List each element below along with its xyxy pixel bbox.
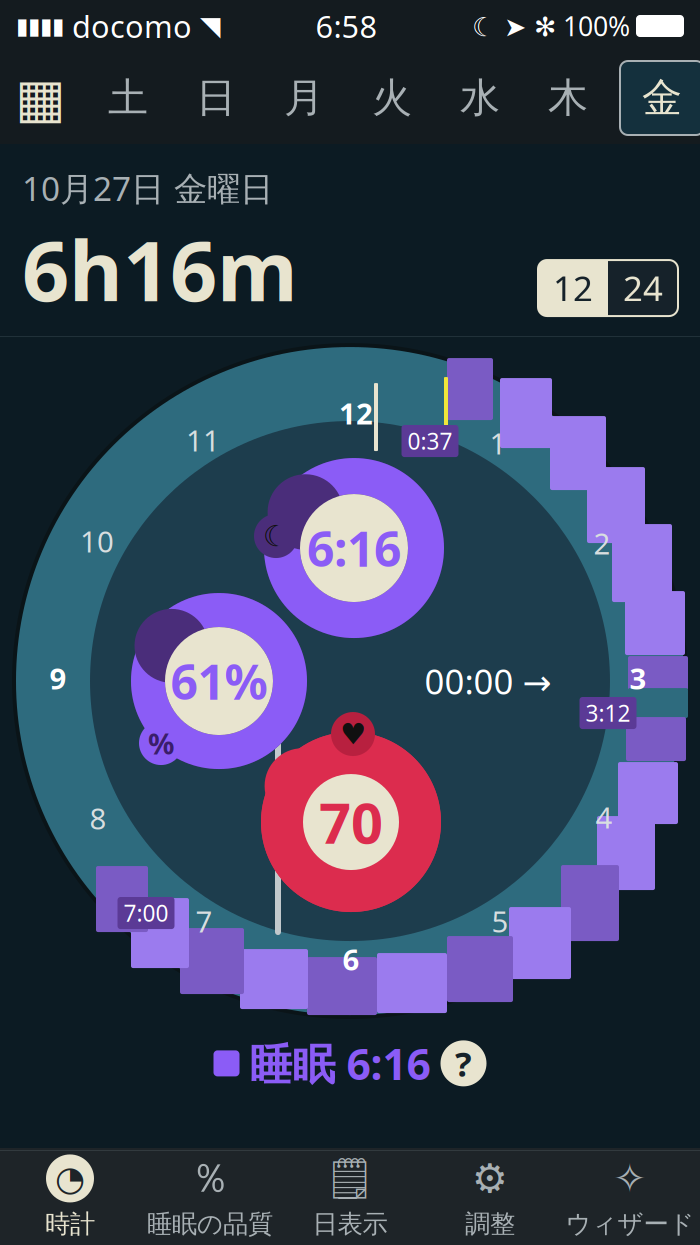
staticText: 12 [553, 265, 593, 311]
button[interactable]: ◔ [0, 1151, 140, 1243]
staticText: 水 [460, 73, 500, 122]
button[interactable]: 木 [524, 61, 612, 135]
staticText: 9 [49, 659, 66, 698]
staticText: 6:16 [307, 516, 401, 580]
staticText: 11 [186, 421, 220, 460]
staticText: ☾ [263, 519, 289, 553]
staticText: 金 [642, 73, 682, 122]
staticText: 1 [489, 424, 506, 463]
staticText: 火 [372, 73, 412, 122]
button[interactable]: ✧ [560, 1151, 700, 1243]
button[interactable]: カレンダー [0, 61, 84, 135]
button[interactable]: 24 [608, 260, 678, 316]
staticText: 土 [108, 73, 148, 122]
staticText: ? [455, 1040, 472, 1086]
staticText: ◔ [55, 1159, 85, 1198]
button[interactable]: ％ [140, 1151, 280, 1243]
button[interactable]: 土 [84, 61, 172, 135]
staticText: % [148, 724, 174, 763]
button[interactable]: 月 [260, 61, 348, 135]
staticText: ☾ ➤ ✻ 100% [472, 8, 630, 44]
staticText: 61% [170, 649, 267, 713]
staticText: 24 [623, 265, 663, 311]
staticText: 70 [319, 785, 383, 859]
staticText: 7:00 [123, 898, 168, 928]
staticText: 時計 [45, 1208, 95, 1239]
button[interactable]: 日 [172, 61, 260, 135]
staticText: 2 [593, 524, 610, 563]
button[interactable]: 12 [538, 260, 608, 316]
staticText: 7 [195, 902, 212, 941]
staticText: ✧ [613, 1156, 647, 1201]
staticText: 10 [80, 522, 114, 561]
staticText: 12 [339, 394, 373, 433]
staticText: 3:12 [585, 698, 630, 728]
staticText: ％ [190, 1154, 230, 1203]
staticText: 睡眠 6:16 [249, 1035, 430, 1092]
staticText: 🗒 [324, 1156, 375, 1201]
staticText: 8 [89, 799, 106, 838]
button[interactable]: 睡眠 6:16 [213, 1035, 430, 1092]
staticText: 3 [629, 659, 646, 698]
staticText: ▮▮▮▮ [16, 13, 64, 39]
staticText: 日表示 [312, 1208, 387, 1239]
button[interactable]: ヘルプ [440, 1040, 486, 1086]
staticText: 10月27日 金曜日 [22, 166, 273, 210]
button[interactable]: 水 [436, 61, 524, 135]
staticText: ▦ [15, 68, 65, 128]
staticText: 4 [595, 798, 612, 837]
staticText: 0:37 [407, 426, 452, 456]
staticText: ♥ [340, 717, 366, 751]
staticText: 月 [284, 73, 324, 122]
staticText: 5 [491, 902, 508, 941]
staticText: 睡眠の品質 [147, 1208, 273, 1239]
staticText: 日 [196, 73, 236, 122]
staticText: 6h16m [22, 214, 298, 324]
button[interactable]: 火 [348, 61, 436, 135]
button[interactable]: 金 [620, 61, 700, 135]
staticText: 00:00 → [424, 658, 551, 704]
staticText: docomo [64, 6, 200, 46]
button[interactable]: 🗒 [280, 1151, 420, 1243]
staticText: 6:58 [315, 6, 377, 46]
staticText: 木 [548, 73, 588, 122]
button[interactable]: ⚙ [420, 1151, 560, 1243]
staticText: 調整 [465, 1208, 515, 1239]
staticText: ◥ [200, 11, 221, 41]
staticText: ウィザード [565, 1208, 694, 1239]
staticText: ⚙ [472, 1156, 508, 1201]
staticText: 6 [342, 940, 359, 979]
